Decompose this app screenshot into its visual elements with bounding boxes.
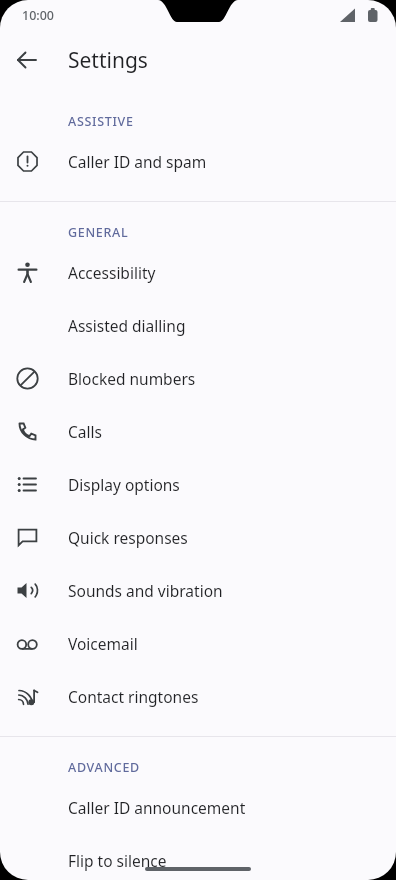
button[interactable]: Back <box>7 40 47 80</box>
staticText: ADVANCED <box>68 759 140 776</box>
button[interactable]: Contact ringtones <box>0 670 396 723</box>
button[interactable]: Flip to silence <box>0 834 396 880</box>
staticText: Quick responses <box>68 527 188 548</box>
staticText: Accessibility <box>68 262 156 283</box>
button[interactable]: Sounds and vibration <box>0 564 396 617</box>
button[interactable]: Voicemail <box>0 617 396 670</box>
staticText: Flip to silence <box>68 850 167 871</box>
button[interactable]: Assisted dialling <box>0 299 396 352</box>
staticText: ASSISTIVE <box>68 113 134 130</box>
button[interactable]: Display options <box>0 458 396 511</box>
staticText: Sounds and vibration <box>68 580 223 601</box>
staticText: Settings <box>68 46 148 75</box>
button[interactable]: Quick responses <box>0 511 396 564</box>
staticText: Contact ringtones <box>68 686 199 707</box>
button[interactable]: Caller ID announcement <box>0 781 396 834</box>
staticText: Caller ID and spam <box>68 151 207 172</box>
staticText: Caller ID announcement <box>68 797 246 818</box>
staticText: Voicemail <box>68 633 138 654</box>
button[interactable]: Accessibility <box>0 246 396 299</box>
button[interactable]: Blocked numbers <box>0 352 396 405</box>
staticText: Calls <box>68 421 102 442</box>
staticText: GENERAL <box>68 224 129 241</box>
staticText: Display options <box>68 474 180 495</box>
staticText: Assisted dialling <box>68 315 186 336</box>
button[interactable]: Calls <box>0 405 396 458</box>
button[interactable]: Caller ID and spam <box>0 135 396 188</box>
staticText: 10:00 <box>22 7 55 24</box>
staticText: Blocked numbers <box>68 368 196 389</box>
